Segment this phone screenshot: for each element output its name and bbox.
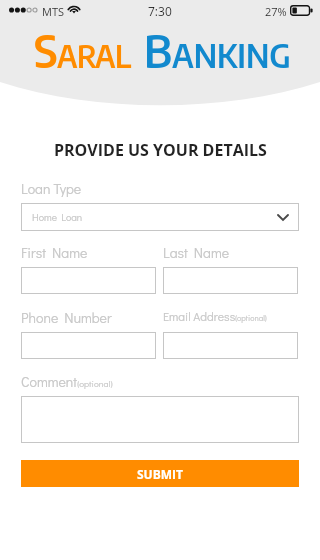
button[interactable] <box>163 332 298 359</box>
staticText: Comment(optional) <box>21 372 113 390</box>
staticText: PROVIDE US YOUR DETAILS <box>54 139 267 161</box>
button[interactable]: Home Loan <box>21 203 299 231</box>
staticText: SARAL <box>34 22 131 78</box>
staticText: 27% <box>265 4 287 19</box>
staticText: SUBMIT <box>137 466 183 482</box>
staticText: Phone Number <box>21 308 112 326</box>
staticText: Home Loan <box>32 211 83 224</box>
other: Open loan type list <box>278 215 288 220</box>
staticText: Loan Type <box>21 179 82 197</box>
staticText: 7:30 <box>148 3 172 19</box>
staticText: Last Name <box>163 243 230 261</box>
staticText: First Name <box>21 243 88 261</box>
button[interactable]: SUBMIT <box>21 460 299 487</box>
staticText: BANKING <box>144 22 291 78</box>
staticText: MTS <box>42 4 64 19</box>
button[interactable] <box>21 396 299 443</box>
button[interactable] <box>21 267 156 294</box>
button[interactable] <box>163 267 298 294</box>
button[interactable] <box>21 332 156 359</box>
staticText: Email Address(optional) <box>163 308 267 324</box>
